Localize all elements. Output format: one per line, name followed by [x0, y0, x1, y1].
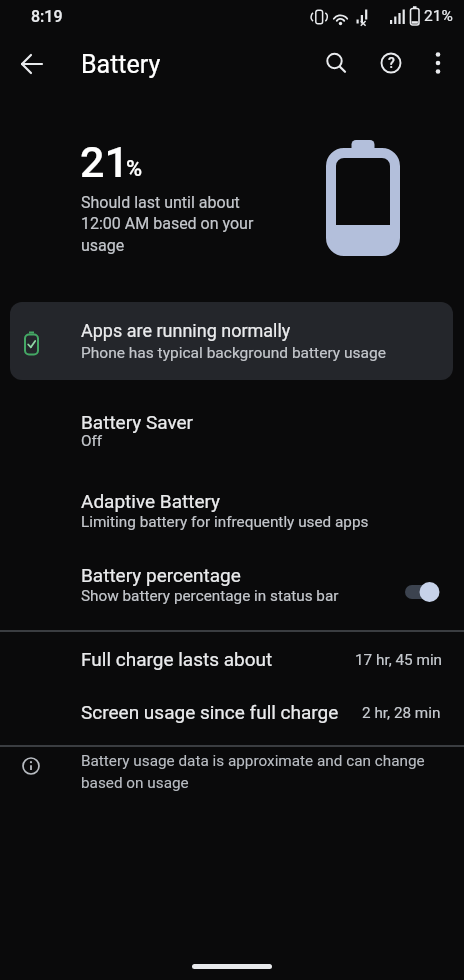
staticText: Battery usage data is approximate and ca…	[81, 752, 425, 791]
button[interactable]	[418, 43, 458, 83]
staticText: Battery	[81, 50, 161, 79]
button[interactable]: Battery percentage	[0, 551, 464, 617]
button[interactable]: Full charge lasts about	[0, 636, 464, 688]
staticText: %	[126, 156, 143, 182]
staticText: Full charge lasts about	[81, 648, 273, 670]
staticText: Limiting battery for infrequently used a…	[81, 513, 369, 531]
button[interactable]: Adaptive Battery	[0, 477, 464, 539]
button[interactable]: Screen usage since full charge	[0, 689, 464, 741]
button[interactable]	[12, 44, 52, 84]
staticText: ?	[388, 55, 395, 71]
button[interactable]: Apps are running normally	[10, 302, 453, 380]
button[interactable]: Battery Saver	[0, 398, 464, 460]
button[interactable]	[316, 43, 356, 83]
staticText: 17 hr, 45 min	[355, 651, 443, 669]
staticText: 21%	[424, 7, 453, 25]
staticText: Adaptive Battery	[81, 490, 221, 512]
button[interactable]: ?	[371, 43, 411, 83]
staticText: 21	[80, 137, 129, 187]
staticText: Should last until about 12:00 AM based o…	[81, 193, 254, 255]
staticText: 2 hr, 28 min	[362, 704, 441, 722]
staticText: Apps are running normally	[81, 320, 291, 341]
staticText: Battery percentage	[81, 564, 241, 586]
staticText: 8:19	[31, 7, 63, 26]
staticText: Show battery percentage in status bar	[81, 587, 339, 605]
staticText: Screen usage since full charge	[81, 701, 339, 723]
staticText: Off	[81, 432, 103, 450]
staticText: Battery Saver	[81, 411, 194, 433]
staticText: Phone has typical background battery usa…	[81, 344, 386, 362]
